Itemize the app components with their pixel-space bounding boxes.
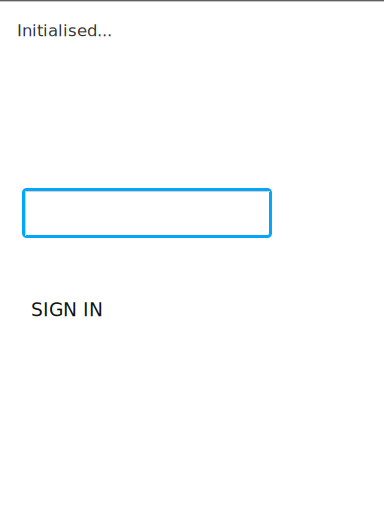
staticText: Initialised... xyxy=(17,21,112,40)
button[interactable]: Username xyxy=(22,188,272,238)
staticText: SIGN IN xyxy=(31,299,103,321)
button[interactable]: SIGN IN xyxy=(23,293,111,327)
